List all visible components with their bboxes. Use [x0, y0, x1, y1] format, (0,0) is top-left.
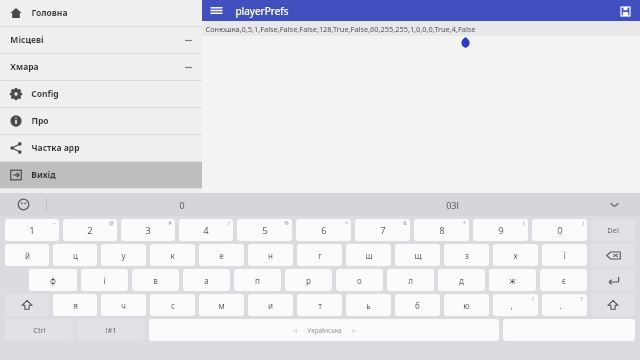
button[interactable]: Del	[591, 219, 635, 241]
button[interactable]: к	[150, 244, 195, 266]
staticText: ч	[121, 300, 126, 311]
button[interactable]: 2	[63, 219, 117, 241]
staticText: (	[523, 220, 525, 227]
button[interactable]: г	[297, 244, 342, 266]
button[interactable]: 1	[5, 219, 59, 241]
button[interactable]: 4	[179, 219, 233, 241]
button[interactable]: ч	[101, 294, 146, 316]
button[interactable]: Сонюшка,0,5,1,False,False,False,128,True…	[202, 21, 640, 36]
button[interactable]: .	[542, 294, 587, 316]
button[interactable]: ї	[542, 244, 587, 266]
staticText: /	[228, 220, 230, 227]
button[interactable]: Частка app	[0, 135, 202, 161]
button[interactable]: !#1	[77, 319, 145, 341]
button[interactable]: р	[285, 269, 332, 291]
staticText: Del	[607, 225, 619, 235]
staticText: !#1	[105, 325, 117, 335]
button[interactable]: и	[248, 294, 293, 316]
button[interactable]: 9	[473, 219, 528, 241]
button[interactable]: Shift	[591, 294, 635, 316]
button[interactable]: е	[199, 244, 244, 266]
button[interactable]: ш	[346, 244, 391, 266]
button[interactable]: я	[53, 294, 97, 316]
staticText: 3	[145, 224, 151, 237]
button[interactable]: л	[387, 269, 434, 291]
button[interactable]: 8	[414, 219, 469, 241]
staticText: Українська	[307, 326, 342, 335]
staticText: 2	[87, 224, 93, 237]
button[interactable]: Вихід	[0, 162, 202, 188]
staticText: ш	[365, 250, 373, 261]
staticText: й	[25, 250, 30, 261]
button[interactable]: щ	[395, 244, 440, 266]
button[interactable]: д	[438, 269, 485, 291]
button[interactable]: ь	[346, 294, 391, 316]
button[interactable]: т	[297, 294, 342, 316]
button[interactable]: Space, Ukrainian	[149, 319, 499, 341]
staticText: @	[109, 220, 114, 227]
staticText: у	[121, 250, 126, 261]
button[interactable]: і	[81, 269, 128, 291]
button[interactable]: 0	[47, 193, 317, 216]
staticText: &	[403, 220, 407, 227]
staticText: Хмара	[10, 61, 39, 73]
staticText: ▷	[352, 328, 356, 333]
staticText: 03l	[446, 199, 459, 211]
button[interactable]: с	[150, 294, 195, 316]
button[interactable]: ю	[444, 294, 489, 316]
staticText: ~	[53, 220, 56, 227]
button[interactable]: Config	[0, 81, 202, 107]
button[interactable]: у	[101, 244, 146, 266]
button[interactable]: Про	[0, 108, 202, 134]
staticText: х	[513, 250, 518, 261]
button[interactable]: Hide suggestions	[588, 193, 640, 216]
staticText: 6	[321, 224, 327, 237]
staticText: ,	[510, 300, 513, 311]
button[interactable]: 6	[296, 219, 351, 241]
button[interactable]: ж	[489, 269, 536, 291]
button[interactable]: з	[444, 244, 489, 266]
staticText: щ	[414, 250, 422, 261]
button[interactable]: Open navigation drawer	[209, 3, 224, 18]
button[interactable]: є	[540, 269, 587, 291]
button[interactable]: о	[336, 269, 383, 291]
button[interactable]: б	[395, 294, 440, 316]
staticText: Про	[31, 115, 49, 127]
button[interactable]: ц	[53, 244, 97, 266]
button[interactable]: ,	[493, 294, 538, 316]
button[interactable]: Emoji	[0, 193, 46, 216]
staticText: р	[306, 275, 311, 286]
button[interactable]: Місцеві	[0, 27, 202, 53]
button[interactable]: Enter	[591, 269, 635, 291]
button[interactable]: п	[234, 269, 281, 291]
button[interactable]: 0	[532, 219, 587, 241]
button[interactable]: Shift	[5, 294, 49, 316]
button[interactable]: ф	[29, 269, 77, 291]
staticText: 4	[203, 224, 209, 237]
button[interactable]: Save	[617, 3, 633, 19]
staticText: ◁	[293, 328, 297, 333]
staticText: є	[562, 275, 566, 286]
button[interactable]: 7	[355, 219, 410, 241]
button[interactable]: Backspace	[591, 244, 635, 266]
staticText: ж	[509, 275, 516, 286]
button[interactable]: а	[183, 269, 230, 291]
button[interactable]: 5	[237, 219, 292, 241]
staticText: ь	[366, 300, 371, 311]
button[interactable]: 03l	[317, 193, 588, 216]
button[interactable]: Хмара	[0, 54, 202, 80]
button[interactable]: в	[132, 269, 179, 291]
staticText: ї	[563, 250, 566, 261]
staticText: %	[284, 220, 289, 227]
staticText: д	[459, 275, 464, 286]
button[interactable]: й	[5, 244, 49, 266]
button[interactable]: Ctrl	[5, 319, 73, 341]
button[interactable]: м	[199, 294, 244, 316]
staticText: 0	[557, 224, 563, 237]
button[interactable]: х	[493, 244, 538, 266]
staticText: и	[268, 300, 273, 311]
button[interactable]: Головна	[0, 0, 202, 26]
button[interactable]: н	[248, 244, 293, 266]
button[interactable]: 3	[121, 219, 175, 241]
